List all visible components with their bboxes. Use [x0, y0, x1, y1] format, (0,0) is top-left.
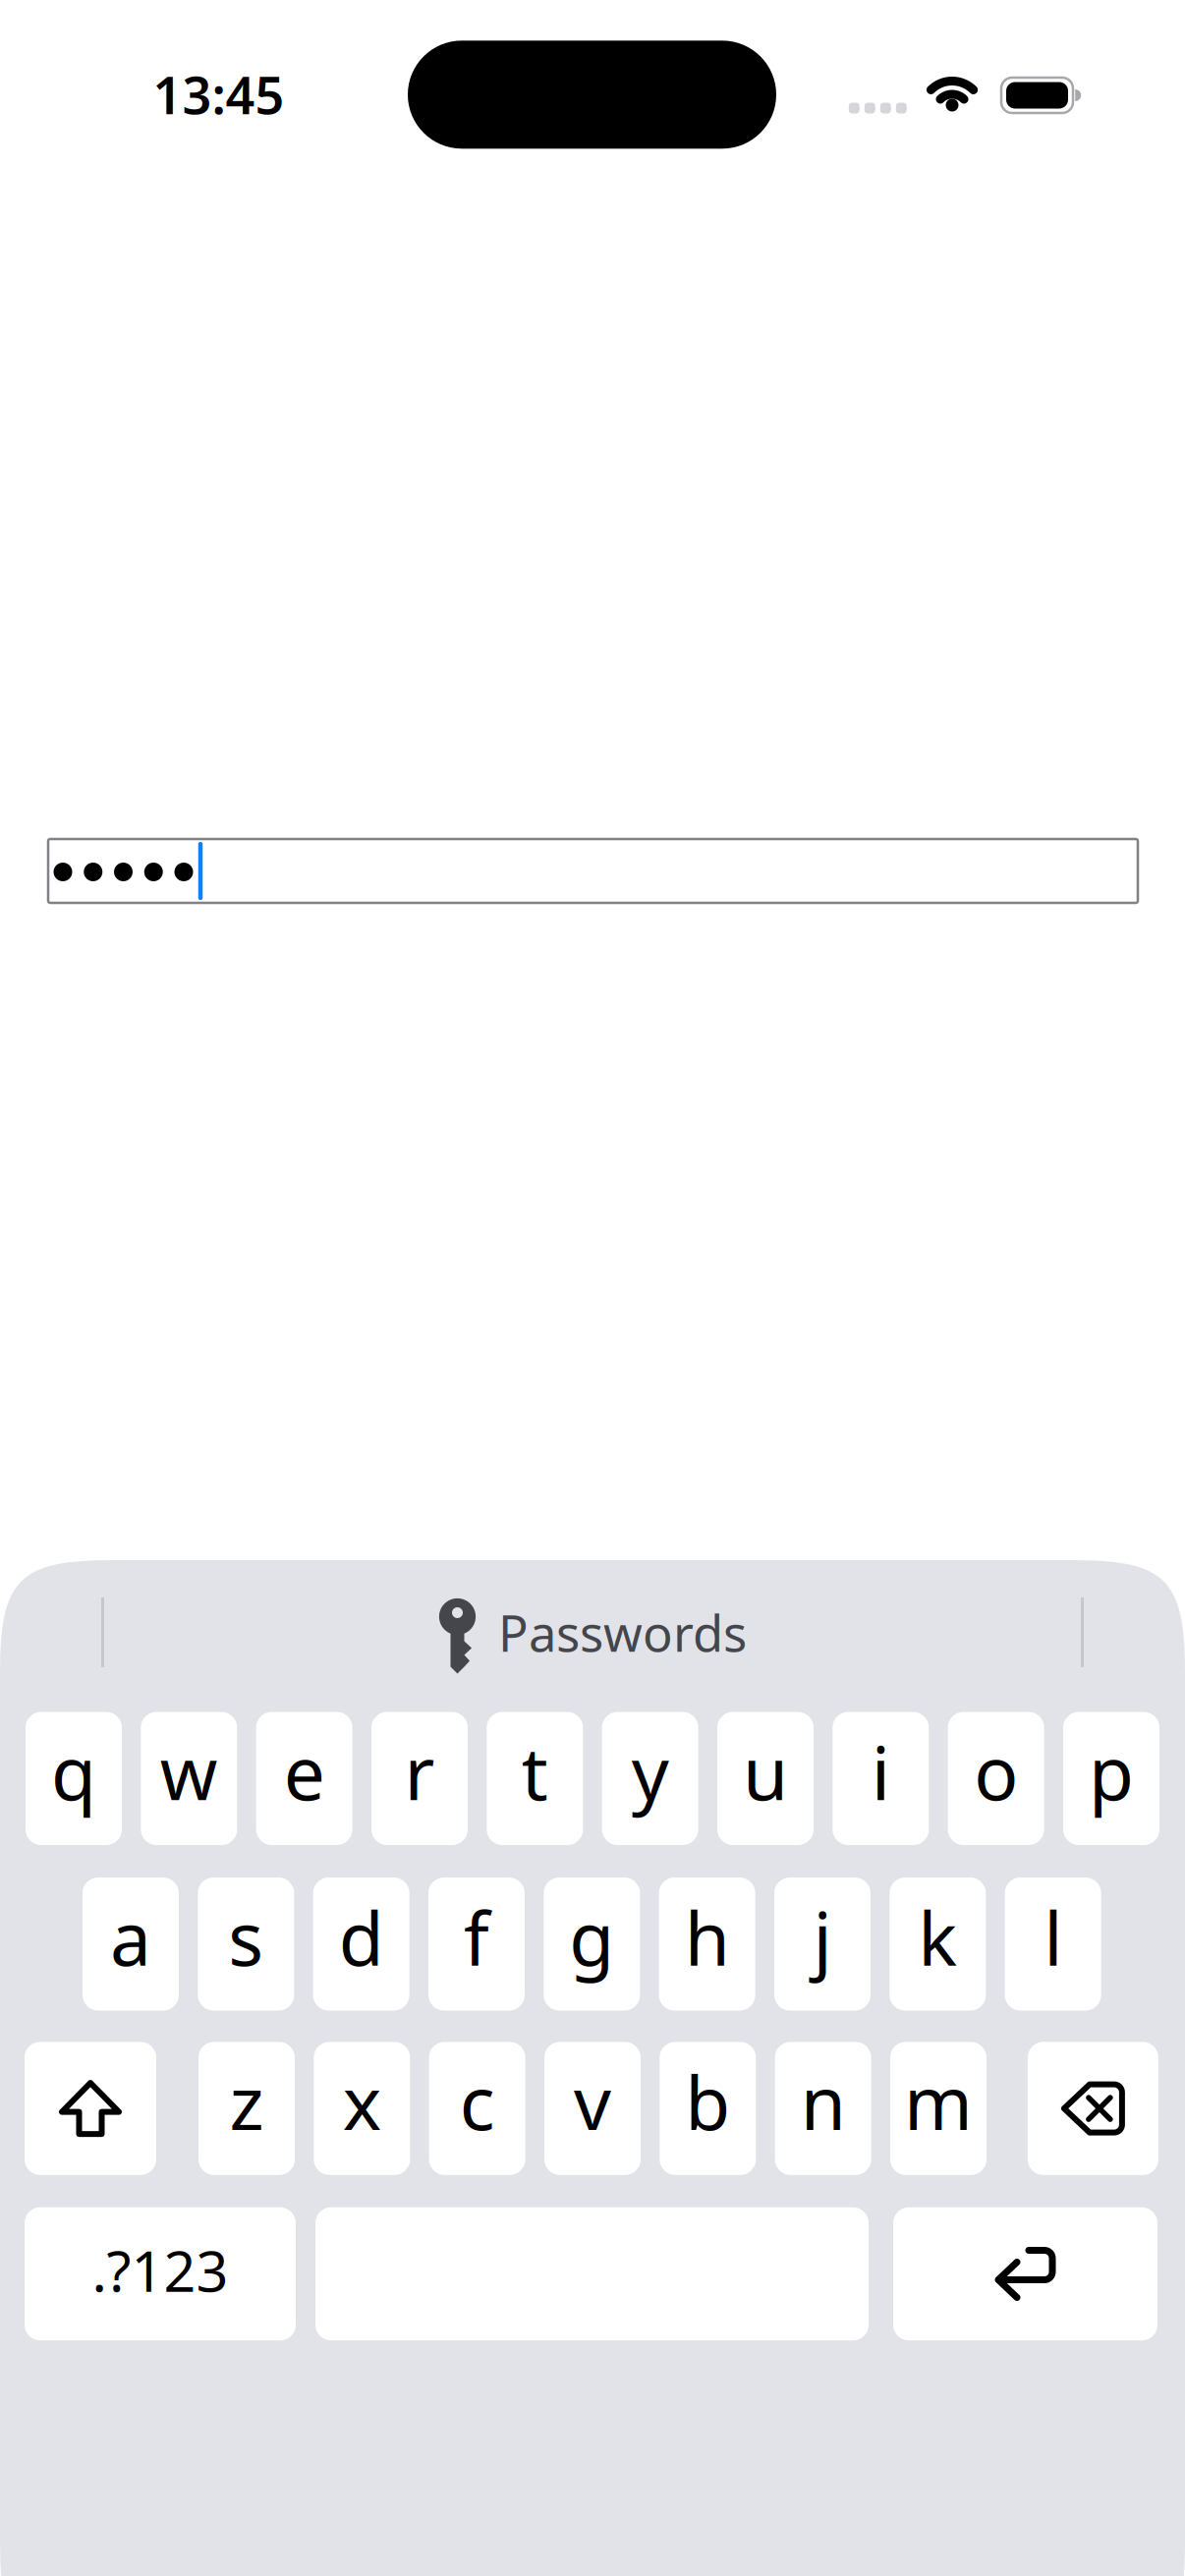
button[interactable]: c — [429, 2042, 525, 2175]
button[interactable]: y — [602, 1712, 698, 1845]
button[interactable]: w — [141, 1712, 237, 1845]
button[interactable]: m — [890, 2042, 987, 2175]
button[interactable]: Return — [893, 2207, 1157, 2341]
button[interactable]: Shift — [25, 2042, 156, 2175]
staticText: j — [813, 1888, 832, 1986]
button[interactable]: l — [1005, 1877, 1101, 2011]
staticText: r — [404, 1723, 435, 1820]
staticText: z — [229, 2053, 264, 2150]
staticText: x — [343, 2053, 381, 2150]
staticText: a — [110, 1888, 151, 1986]
button[interactable]: x — [314, 2042, 410, 2175]
button[interactable]: p — [1063, 1712, 1159, 1845]
button[interactable]: b — [660, 2042, 756, 2175]
staticText: m — [904, 2053, 973, 2150]
button[interactable]: s — [198, 1877, 294, 2011]
button[interactable]: z — [198, 2042, 295, 2175]
button[interactable]: Password — [48, 839, 1138, 903]
button[interactable]: d — [313, 1877, 409, 2011]
button[interactable]: t — [487, 1712, 583, 1845]
button[interactable]: a — [83, 1877, 179, 2011]
staticText: .?123 — [92, 2233, 228, 2307]
button[interactable]: r — [371, 1712, 468, 1845]
button[interactable]: n — [775, 2042, 871, 2175]
staticText: l — [1044, 1888, 1062, 1986]
button[interactable]: v — [544, 2042, 641, 2175]
staticText: i — [871, 1723, 890, 1820]
staticText: u — [743, 1723, 788, 1820]
button[interactable]: k — [890, 1877, 986, 2011]
staticText: b — [685, 2053, 730, 2150]
staticText: q — [51, 1723, 96, 1820]
staticText: n — [800, 2053, 846, 2150]
button[interactable]: h — [659, 1877, 755, 2011]
staticText: y — [631, 1723, 669, 1820]
staticText: v — [574, 2053, 611, 2150]
button[interactable]: u — [717, 1712, 814, 1845]
button[interactable]: o — [948, 1712, 1044, 1845]
staticText: w — [160, 1723, 218, 1820]
button[interactable]: q — [26, 1712, 122, 1845]
staticText: d — [339, 1888, 384, 1986]
staticText: o — [974, 1723, 1018, 1820]
staticText: k — [918, 1888, 957, 1986]
button[interactable]: j — [774, 1877, 871, 2011]
staticText: h — [684, 1888, 730, 1986]
staticText: s — [228, 1888, 264, 1986]
button[interactable]: Passwords — [346, 1573, 838, 1691]
staticText: 13:45 — [153, 60, 284, 128]
staticText: e — [284, 1723, 325, 1820]
staticText: p — [1089, 1723, 1134, 1820]
staticText: g — [569, 1888, 614, 1986]
button[interactable]: .?123 — [25, 2207, 296, 2341]
staticText: c — [460, 2053, 495, 2150]
staticText: f — [464, 1888, 489, 1986]
staticText: Passwords — [498, 1599, 747, 1665]
button[interactable]: g — [544, 1877, 640, 2011]
staticText: t — [522, 1723, 548, 1820]
button[interactable]: e — [256, 1712, 352, 1845]
button[interactable]: i — [833, 1712, 929, 1845]
button[interactable]: f — [428, 1877, 525, 2011]
button[interactable]: Delete — [1028, 2042, 1158, 2175]
